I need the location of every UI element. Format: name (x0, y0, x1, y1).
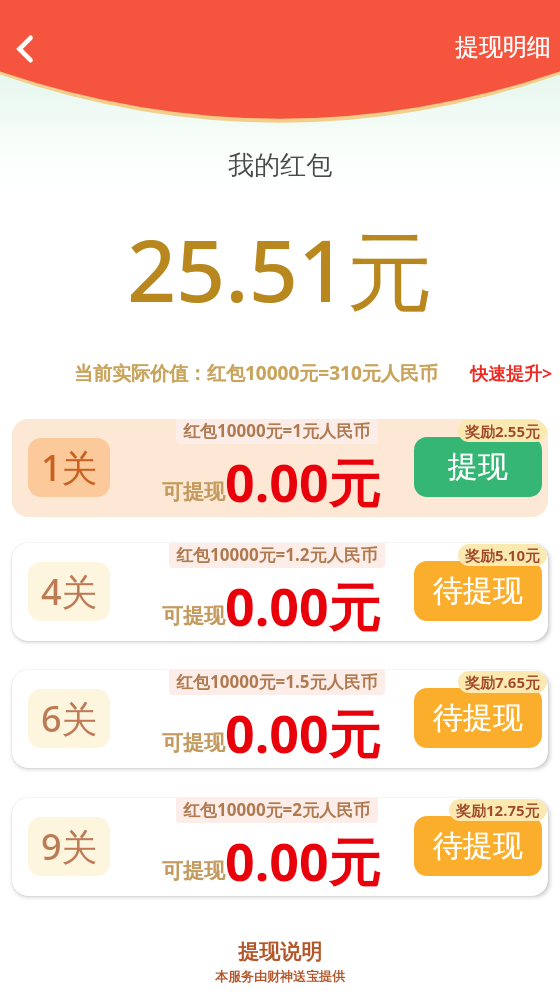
button[interactable]: Back (2, 26, 48, 72)
staticText: 0.00元 (225, 825, 381, 893)
staticText: 红包10000元=1.2元人民币 (176, 543, 378, 566)
button[interactable]: 1关 (12, 419, 548, 517)
staticText: 提现说明 (238, 939, 322, 965)
staticText: 可提现 (162, 603, 225, 629)
staticText: 可提现 (162, 858, 225, 884)
button[interactable]: 6关 (12, 670, 548, 768)
staticText: 25.51元 (0, 210, 560, 327)
staticText: 可提现 (162, 730, 225, 756)
staticText: 0.00元 (225, 697, 381, 765)
staticText: 0.00元 (225, 570, 381, 638)
staticText: 待提现 (433, 827, 523, 865)
button[interactable]: 4关 (12, 543, 548, 641)
button[interactable]: 待提现 (414, 561, 542, 621)
staticText: 待提现 (433, 572, 523, 610)
staticText: 红包10000元=1.5元人民币 (176, 670, 378, 693)
staticText: 提现 (448, 448, 508, 486)
staticText: 待提现 (433, 699, 523, 737)
button[interactable]: 快速提升> (470, 361, 560, 386)
staticText: 6关 (41, 694, 98, 743)
staticText: 当前实际价值：红包10000元=310元人民币 (74, 360, 438, 386)
staticText: 1关 (41, 443, 98, 492)
button[interactable]: 待提现 (414, 816, 542, 876)
button[interactable]: 待提现 (414, 688, 542, 748)
staticText: 可提现 (162, 479, 225, 505)
staticText: 奖励2.55元 (465, 421, 540, 441)
staticText: 奖励7.65元 (465, 672, 540, 692)
staticText: 红包10000元=2元人民币 (183, 798, 371, 821)
staticText: 4关 (41, 567, 98, 616)
staticText: 快速提升> (470, 361, 553, 386)
staticText: 红包10000元=1元人民币 (183, 419, 371, 442)
staticText: 本服务由财神送宝提供 (0, 968, 560, 984)
staticText: 提现明细 (455, 32, 551, 62)
button[interactable]: 9关 (12, 798, 548, 896)
staticText: 9关 (41, 822, 98, 871)
staticText: 我的红包 (0, 149, 560, 182)
button[interactable]: 提现说明 (0, 939, 560, 965)
button[interactable]: 提现 (414, 437, 542, 497)
staticText: 0.00元 (225, 446, 381, 514)
staticText: 奖励5.10元 (465, 545, 540, 565)
staticText: 奖励12.75元 (456, 800, 540, 820)
